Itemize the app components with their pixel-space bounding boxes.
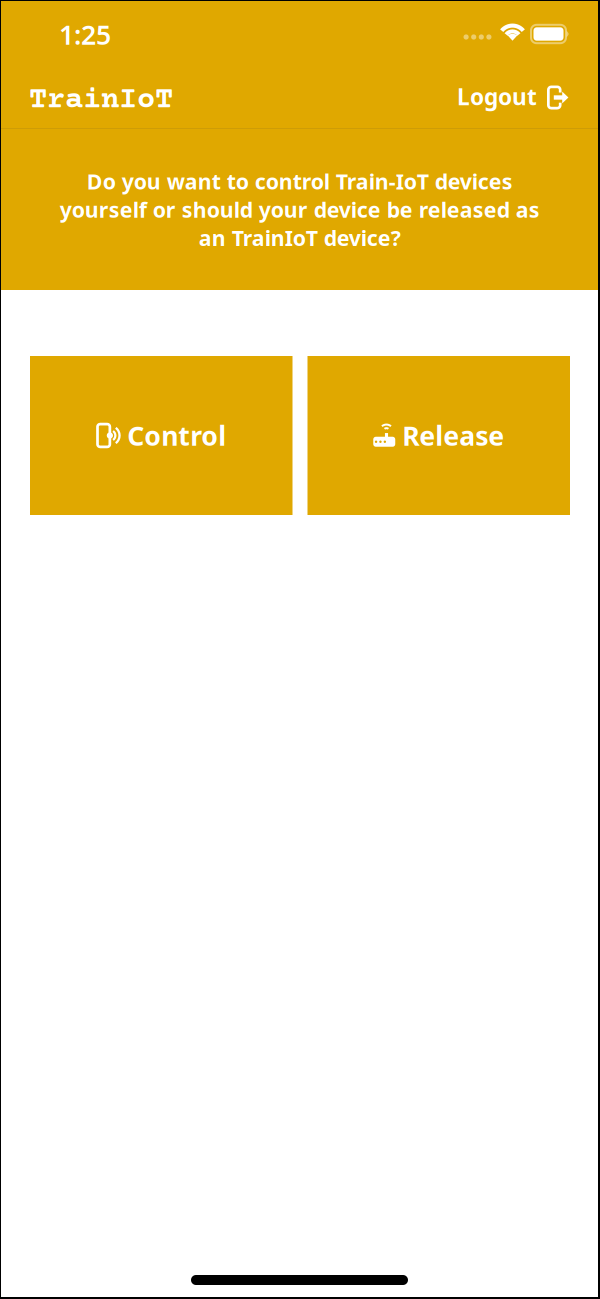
- staticText: Do you want to control Train-IoT devices…: [59, 167, 539, 252]
- staticText: Control: [127, 418, 226, 453]
- button[interactable]: Logout: [457, 76, 569, 118]
- button[interactable]: Control: [30, 356, 292, 515]
- staticText: Release: [402, 418, 504, 453]
- staticText: TrainIoT: [29, 83, 173, 118]
- staticText: 1:25: [59, 17, 111, 52]
- button[interactable]: Release: [307, 356, 570, 515]
- staticText: Logout: [457, 81, 537, 111]
